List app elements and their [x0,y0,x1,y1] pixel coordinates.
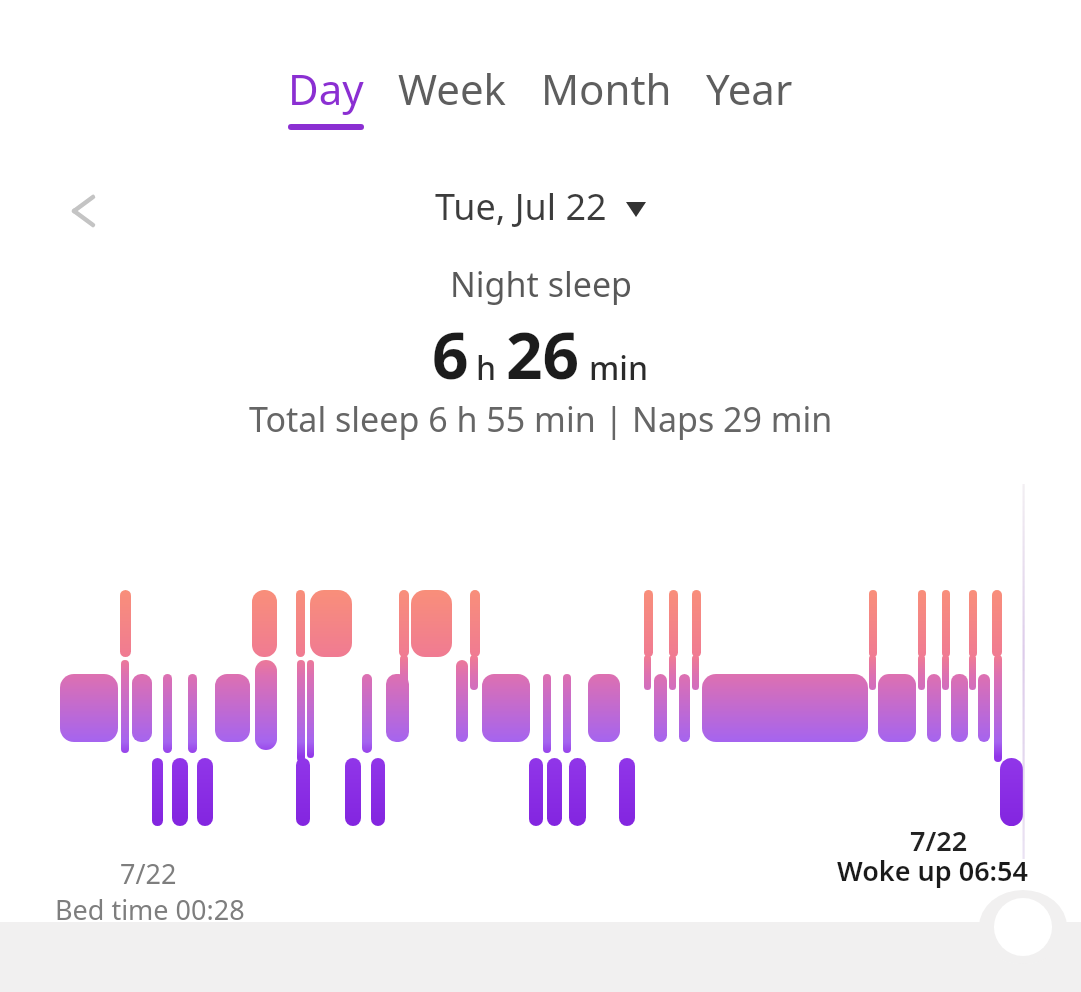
button[interactable]: Day [288,60,364,130]
button[interactable] [71,196,95,226]
button[interactable]: Month [541,60,672,117]
button[interactable]: Tue, Jul 22 [435,182,647,231]
staticText: 6 [432,311,469,398]
staticText: Total sleep 6 h 55 min | Naps 29 min [249,396,833,442]
staticText: min [589,346,649,390]
staticText: Tue, Jul 22 [435,182,607,231]
staticText: 26 [506,311,580,398]
staticText: Woke up 06:54 [837,852,1028,889]
staticText: Bed time 00:28 [55,891,245,928]
button[interactable] [994,898,1052,956]
staticText: 7/22 [910,822,968,859]
button[interactable]: Week [398,60,507,117]
staticText: Night sleep [450,261,632,307]
button[interactable]: Year [706,60,793,117]
staticText: 7/22 [120,855,177,892]
staticText: Day [288,60,364,117]
staticText: h [476,346,497,390]
